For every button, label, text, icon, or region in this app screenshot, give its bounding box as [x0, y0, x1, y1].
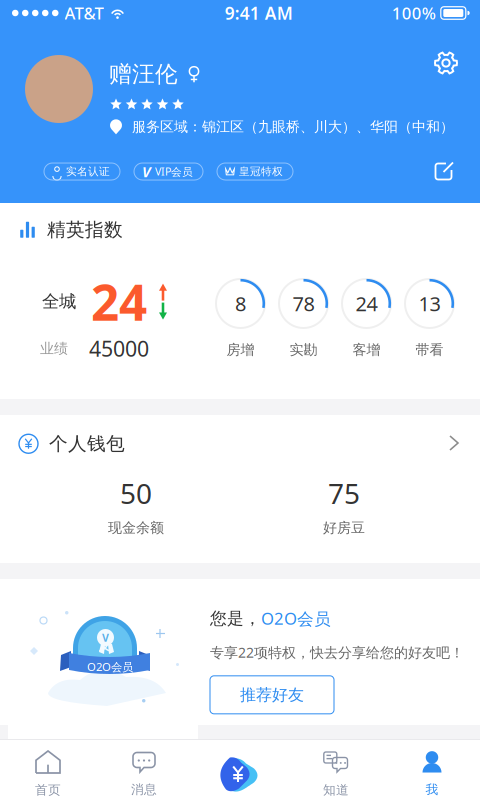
staticText: VIP会员: [155, 164, 193, 179]
button[interactable]: 知道: [288, 751, 384, 798]
staticText: 个人钱包: [49, 432, 125, 455]
staticText: 您是，: [210, 608, 261, 629]
staticText: 消息: [131, 781, 157, 797]
staticText: O2O会员: [87, 659, 133, 674]
staticText: 24: [91, 268, 147, 335]
staticText: 现金余额: [108, 519, 164, 537]
button[interactable]: 我: [384, 751, 480, 797]
button[interactable]: 消息: [96, 751, 192, 797]
staticText: 8: [235, 290, 246, 317]
staticText: 皇冠特权: [239, 165, 283, 178]
staticText: 实名认证: [66, 165, 110, 178]
button[interactable]: Edit: [427, 155, 461, 188]
button[interactable]: 首页: [0, 751, 96, 798]
button[interactable]: V: [134, 163, 203, 180]
staticText: 实勘: [289, 341, 317, 359]
staticText: V: [102, 630, 109, 645]
button[interactable]: 实名认证: [44, 163, 120, 180]
staticText: 100%: [392, 2, 436, 24]
staticText: 专享22项特权，快去分享给您的好友吧！: [210, 643, 464, 662]
staticText: 50: [120, 474, 152, 512]
button[interactable]: Settings: [426, 43, 466, 83]
staticText: V: [142, 161, 151, 181]
staticText: 知道: [323, 782, 349, 798]
staticText: 75: [328, 474, 360, 512]
staticText: 带看: [415, 341, 443, 359]
button[interactable]: 发布: [192, 755, 288, 793]
staticText: O2O会员: [261, 607, 331, 630]
staticText: 房增: [226, 341, 254, 359]
staticText: 好房豆: [323, 519, 365, 537]
staticText: 服务区域：锦江区（九眼桥、川大）、华阳（中和）: [132, 118, 454, 136]
staticText: 精英指数: [47, 218, 123, 241]
staticText: 全城: [42, 291, 76, 312]
button[interactable]: 个人钱包: [0, 415, 480, 563]
staticText: 推荐好友: [240, 685, 304, 705]
staticText: 首页: [35, 782, 61, 798]
staticText: 客增: [352, 341, 380, 359]
button[interactable]: 推荐好友: [210, 676, 334, 714]
staticText: 赠汪伦: [109, 60, 178, 89]
staticText: 24: [355, 290, 377, 317]
staticText: 业绩: [40, 340, 68, 357]
staticText: 13: [418, 290, 440, 317]
staticText: AT&T: [64, 2, 103, 24]
staticText: 我: [425, 781, 438, 797]
staticText: 9:41 AM: [225, 1, 293, 25]
staticText: 78: [292, 290, 314, 317]
button[interactable]: 皇冠特权: [217, 163, 293, 180]
staticText: 45000: [89, 334, 149, 363]
